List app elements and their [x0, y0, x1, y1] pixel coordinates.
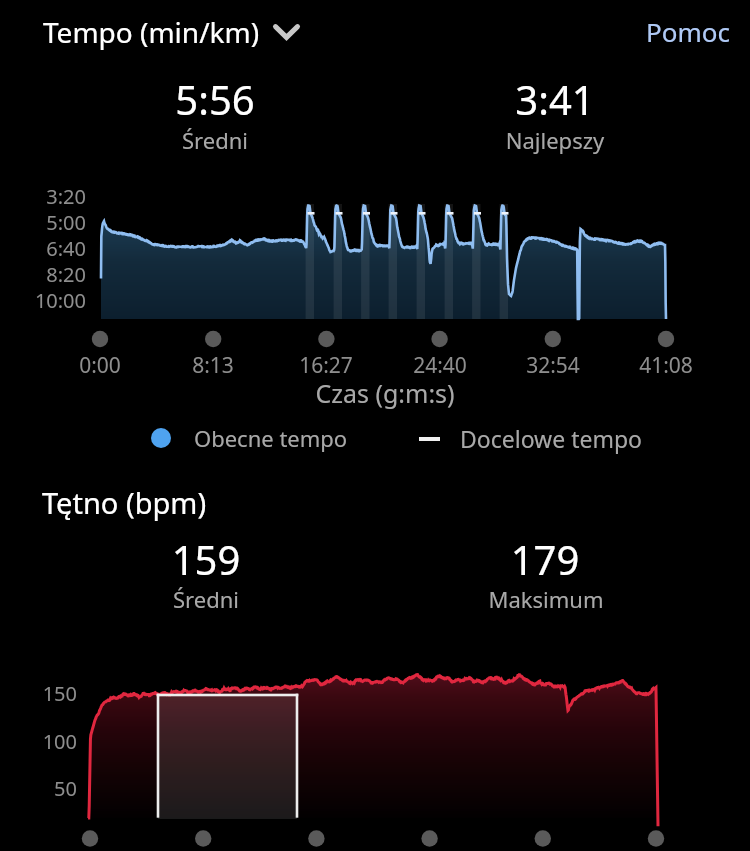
button[interactable]: Docelowe tempo: [413, 417, 648, 460]
staticText: 0:00: [30, 351, 170, 380]
staticText: Pomoc: [646, 14, 730, 49]
staticText: Tętno (bpm): [42, 483, 442, 522]
staticText: Średni: [6, 584, 406, 614]
staticText: 8:13: [143, 351, 283, 380]
staticText: 6:40: [0, 235, 86, 262]
staticText: Czas (g:m:s): [185, 376, 585, 410]
staticText: 3:41: [355, 72, 750, 126]
staticText: 3:20: [0, 183, 86, 210]
staticText: 100: [0, 728, 77, 755]
button[interactable]: Obecne tempo: [145, 417, 354, 459]
staticText: 50: [0, 775, 77, 802]
staticText: 5:56: [15, 72, 415, 126]
button[interactable]: Tempo (min/km): [40, 8, 303, 56]
staticText: 41:08: [596, 351, 736, 380]
staticText: 5:00: [0, 209, 86, 236]
staticText: Maksimum: [346, 584, 746, 614]
staticText: Docelowe tempo: [460, 423, 642, 454]
staticText: 179: [345, 532, 745, 586]
staticText: 24:40: [370, 351, 510, 380]
staticText: 150: [0, 680, 77, 707]
staticText: 10:00: [0, 287, 86, 314]
staticText: 8:20: [0, 261, 86, 288]
staticText: 16:27: [256, 351, 396, 380]
staticText: Obecne tempo: [194, 423, 348, 453]
staticText: 159: [6, 532, 406, 586]
staticText: Tempo (min/km): [43, 13, 260, 51]
staticText: Średni: [15, 125, 415, 155]
button[interactable]: Pomoc: [642, 9, 734, 54]
staticText: Najlepszy: [355, 125, 750, 155]
staticText: 32:54: [483, 351, 623, 380]
